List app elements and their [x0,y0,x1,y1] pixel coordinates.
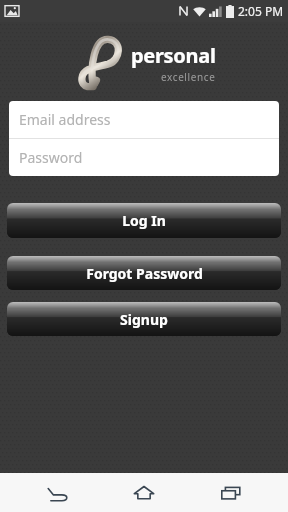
staticText: Log In [122,211,166,230]
button[interactable]: Email address [9,101,279,138]
button[interactable]: Back [27,473,87,512]
button[interactable]: Password [9,139,279,176]
button[interactable]: Forgot Password [7,256,281,290]
staticText: Signup [120,310,168,329]
staticText: excellence [161,70,216,84]
button[interactable]: Home [114,473,174,512]
button[interactable]: Recent apps [201,473,261,512]
staticText: Password [19,148,83,167]
button[interactable]: Signup [7,302,281,336]
staticText: Email address [19,110,111,129]
staticText: 2:05 PM [238,3,284,19]
button[interactable]: Log In [7,203,281,238]
staticText: Forgot Password [86,264,203,283]
staticText: personal [131,42,216,69]
